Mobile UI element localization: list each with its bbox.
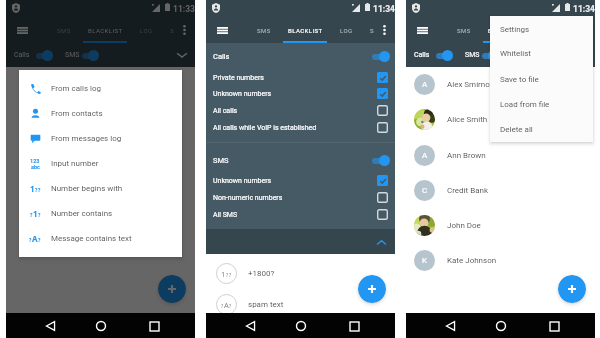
button[interactable]: SMS [444,17,484,43]
button[interactable]: Recent apps [343,315,365,337]
button[interactable]: Add entry [558,275,586,303]
button[interactable]: Expand [174,47,190,63]
staticText: Save to file [500,75,539,84]
staticText: 11:34 [573,4,595,14]
button[interactable]: Settings [490,17,593,42]
staticText: ? [226,272,229,279]
button[interactable]: Load from file [490,92,593,117]
button[interactable]: BLACKLIST [283,17,327,43]
staticText: 1 [33,208,38,219]
button[interactable]: 1 [216,258,395,289]
button[interactable]: Open navigation menu [411,19,433,41]
staticText: S [370,27,375,34]
button[interactable]: BLACKLIST [483,17,527,43]
staticText: Number contains [51,209,113,218]
button[interactable]: S [152,17,192,43]
staticText: Message contains text [51,234,132,243]
staticText: John Doe [447,221,481,230]
button[interactable]: K [414,243,595,278]
button[interactable]: More options [376,22,392,38]
staticText: Unknown numbers [213,177,272,185]
staticText: 11:33 [173,4,195,14]
staticText: A [32,233,38,244]
staticText: All calls [213,107,238,115]
staticText: LOG [140,27,153,34]
staticText: Credit Bank [447,186,488,195]
button[interactable]: Recent apps [143,315,165,337]
button[interactable]: LOG [326,17,366,43]
button[interactable]: 123 [19,151,182,176]
staticText: ? [38,212,41,219]
staticText: All SMS [213,211,238,219]
button[interactable]: Unknown numbers [206,85,395,102]
staticText: From messages log [51,134,122,143]
staticText: A [422,80,428,89]
button[interactable]: A [414,138,595,173]
staticText: spam text [248,300,284,309]
button[interactable]: ? [19,226,182,251]
button[interactable]: LOG [526,17,566,43]
button[interactable]: All SMS [206,206,395,223]
button[interactable]: Home [290,315,312,337]
staticText: Kate Johnson [447,256,497,265]
button[interactable]: From contacts [19,101,182,126]
button[interactable]: S [352,17,392,43]
button[interactable]: Back [39,315,61,337]
button[interactable]: Save to file [490,67,593,92]
staticText: 1 [30,183,35,194]
staticText: 1 [221,269,226,279]
button[interactable]: 1 [19,176,182,201]
button[interactable]: ? [19,201,182,226]
button[interactable]: Private numbers [206,69,395,86]
button[interactable]: SMS [206,147,395,173]
button[interactable]: Collapse [373,234,389,250]
button[interactable]: Alice Smith [414,102,595,137]
button[interactable]: ? [216,289,395,320]
button[interactable]: Delete all [490,117,593,142]
staticText: SMS [57,27,71,34]
button[interactable]: Whitelist [490,41,593,66]
button[interactable]: John Doe [414,208,595,243]
button[interactable]: Home [90,315,112,337]
staticText: Number begins with [51,184,123,193]
button[interactable]: LOG [126,17,166,43]
button[interactable]: Open navigation menu [11,19,33,41]
staticText: SMS [465,51,480,59]
staticText: From calls log [51,84,102,93]
button[interactable]: Home [490,315,512,337]
button[interactable]: All calls [206,102,395,119]
staticText: Non-numeric numbers [213,194,283,202]
button[interactable]: Calls [206,43,395,69]
staticText: ? [229,272,232,279]
button[interactable]: From messages log [19,126,182,151]
button[interactable]: Back [239,315,261,337]
button[interactable]: Open navigation menu [211,19,233,41]
staticText: Alice Smith [447,115,488,124]
staticText: BLACKLIST [288,27,323,34]
staticText: ? [221,303,224,310]
button[interactable]: Add entry [158,275,186,303]
button[interactable]: From calls log [19,76,182,101]
button[interactable]: Back [439,315,461,337]
staticText: 123 [30,158,40,164]
staticText: Calls [213,52,230,61]
staticText: ? [229,303,232,310]
button[interactable]: A [414,67,595,102]
staticText: SMS [213,156,229,165]
staticText: BLACKLIST [88,27,123,34]
button[interactable]: BLACKLIST [83,17,127,43]
staticText: Calls [14,51,30,59]
button[interactable]: More options [176,22,192,38]
button[interactable]: SMS [244,17,284,43]
button[interactable]: C [414,173,595,208]
button[interactable]: Recent apps [543,315,565,337]
button[interactable]: Non-numeric numbers [206,189,395,206]
button[interactable]: All calls while VoIP is established [206,119,395,136]
button[interactable]: Add entry [358,275,386,303]
button[interactable]: Unknown numbers [206,172,395,189]
button[interactable]: SMS [44,17,84,43]
staticText: abc [31,164,40,170]
